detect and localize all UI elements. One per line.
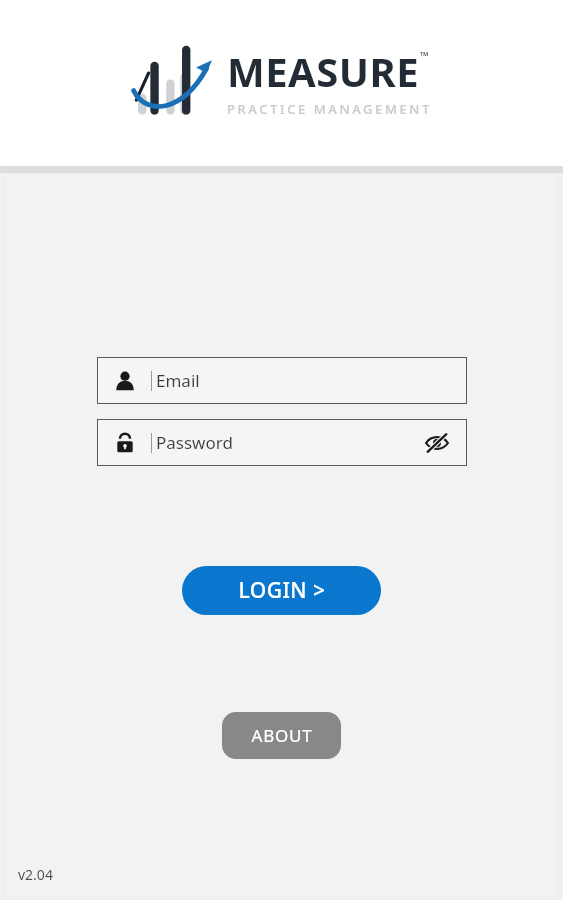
staticText: LOGIN >	[238, 576, 326, 605]
button[interactable]: LOGIN >	[182, 566, 381, 615]
staticText: PRACTICE MANAGEMENT	[227, 100, 432, 118]
button[interactable]: Password	[97, 419, 467, 466]
button[interactable]: ABOUT	[222, 712, 341, 759]
button[interactable]: Show password	[417, 423, 457, 463]
staticText: ™	[420, 48, 429, 63]
staticText: v2.04	[18, 865, 53, 884]
button[interactable]: Email	[97, 357, 467, 404]
staticText: Password	[156, 431, 233, 454]
staticText: MEASURE	[227, 44, 420, 98]
staticText: Email	[156, 369, 200, 392]
staticText: ABOUT	[251, 724, 313, 747]
